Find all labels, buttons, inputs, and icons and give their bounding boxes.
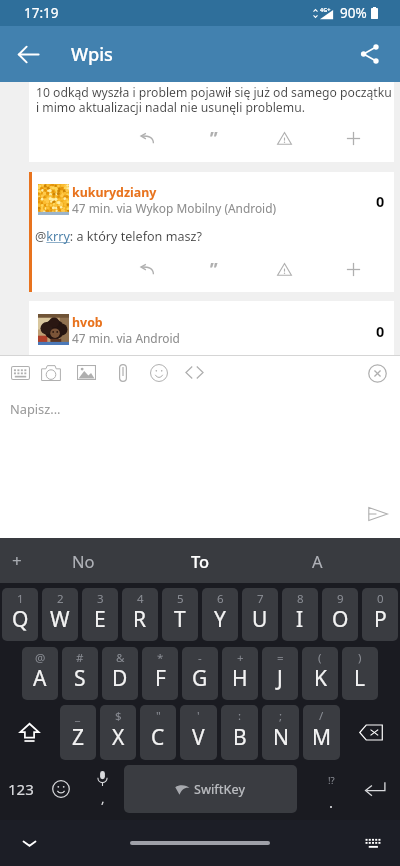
staticText: 2	[57, 591, 64, 607]
staticText: 9	[337, 591, 344, 607]
staticText: 8	[297, 591, 304, 607]
button[interactable]: 9	[322, 588, 358, 641]
button[interactable]: 5	[162, 588, 198, 641]
button[interactable]: 7	[242, 588, 278, 641]
button[interactable]: /	[303, 705, 340, 760]
button[interactable]: &	[102, 647, 138, 700]
button[interactable]: @	[22, 647, 58, 700]
button[interactable]: #	[62, 647, 98, 700]
staticText: +	[12, 549, 22, 572]
staticText: 6	[217, 591, 224, 607]
button[interactable]: Send	[363, 499, 393, 529]
button[interactable]: 6	[202, 588, 238, 641]
staticText: O	[332, 605, 349, 634]
button[interactable]: ;	[262, 705, 299, 760]
button[interactable]: Voice input	[80, 764, 124, 814]
button[interactable]: Add	[340, 125, 366, 151]
button[interactable]: 3	[82, 588, 118, 641]
staticText: M	[312, 723, 332, 752]
button[interactable]: Share	[348, 32, 392, 76]
staticText: Z	[72, 723, 85, 752]
button[interactable]: Space	[124, 765, 297, 813]
button[interactable]: 1	[2, 588, 38, 641]
button[interactable]: Add	[340, 256, 366, 282]
staticText: (	[318, 650, 322, 666]
button[interactable]: Quote	[201, 125, 227, 151]
staticText: ,	[101, 789, 105, 807]
button[interactable]: Switch keyboard	[355, 825, 391, 861]
staticText: &	[116, 650, 125, 666]
button[interactable]: *	[142, 647, 178, 700]
staticText: W	[50, 605, 70, 634]
button[interactable]: _	[60, 705, 96, 760]
button[interactable]: Reply	[134, 125, 160, 151]
staticText: @	[35, 650, 46, 666]
button[interactable]: Reply	[134, 256, 160, 282]
button[interactable]: :	[221, 705, 258, 760]
staticText: 123	[8, 779, 34, 799]
staticText: R	[133, 605, 147, 634]
button[interactable]: Keyboard	[8, 360, 33, 385]
staticText: D	[112, 664, 128, 693]
staticText: U	[252, 605, 268, 634]
button[interactable]: A	[259, 538, 376, 583]
staticText: kukurydziany	[72, 184, 157, 201]
button[interactable]: "	[140, 705, 176, 760]
button[interactable]: '	[180, 705, 217, 760]
button[interactable]: 10 odkąd wyszła i problem pojawił się ju…	[29, 82, 394, 162]
button[interactable]: Emoji	[42, 764, 80, 814]
staticText: 10 odkąd wyszła i problem pojawił się ju…	[36, 84, 393, 116]
button[interactable]: Enter	[350, 764, 400, 814]
staticText: ”	[210, 258, 218, 281]
staticText: E	[94, 605, 106, 634]
button[interactable]: Emoji	[146, 360, 171, 385]
staticText: I	[296, 605, 304, 634]
button[interactable]: No	[24, 538, 142, 583]
button[interactable]: Backspace	[342, 705, 400, 760]
staticText: A	[33, 664, 47, 693]
button[interactable]: Report	[271, 256, 297, 282]
button[interactable]: To	[142, 538, 259, 583]
button[interactable]: Hide keyboard	[11, 825, 47, 861]
button[interactable]: 123	[0, 764, 42, 814]
staticText: H	[232, 664, 248, 693]
staticText: 17:19	[24, 4, 59, 22]
button[interactable]: hvob	[29, 301, 394, 355]
button[interactable]: kukurydziany	[29, 172, 394, 292]
button[interactable]: Quote	[201, 256, 227, 282]
staticText: F	[155, 664, 166, 693]
button[interactable]: (	[302, 647, 338, 700]
button[interactable]: =	[262, 647, 298, 700]
staticText: 0	[376, 321, 385, 341]
button[interactable]: Attach file	[110, 360, 135, 385]
button[interactable]: Image	[74, 360, 99, 385]
staticText: _	[75, 708, 81, 724]
button[interactable]: Close	[364, 360, 390, 386]
button[interactable]: 4	[122, 588, 158, 641]
staticText: 5	[177, 591, 184, 607]
staticText: A	[312, 550, 323, 572]
button[interactable]: )	[342, 647, 378, 700]
button[interactable]: -	[182, 647, 218, 700]
button[interactable]: $	[100, 705, 136, 760]
staticText: "	[156, 708, 161, 724]
button[interactable]: 2	[42, 588, 78, 641]
button[interactable]: !?	[312, 764, 350, 814]
staticText: ”	[210, 127, 218, 150]
button[interactable]: 0	[362, 588, 398, 641]
staticText: Wpis	[71, 42, 113, 67]
staticText: '	[197, 708, 200, 724]
staticText: 4	[137, 591, 144, 607]
button[interactable]: 8	[282, 588, 318, 641]
button[interactable]: +	[222, 647, 258, 700]
staticText: 3	[97, 591, 104, 607]
staticText: X	[112, 723, 125, 752]
staticText: +	[237, 650, 244, 666]
button[interactable]: Code	[182, 360, 207, 385]
button[interactable]: Camera	[38, 360, 63, 385]
staticText: K	[314, 664, 327, 693]
button[interactable]: Back	[6, 32, 50, 76]
button[interactable]: Shift	[0, 705, 58, 760]
button[interactable]: Report	[271, 125, 297, 151]
staticText: 47 min. via Wykop Mobilny (Android)	[72, 200, 277, 216]
